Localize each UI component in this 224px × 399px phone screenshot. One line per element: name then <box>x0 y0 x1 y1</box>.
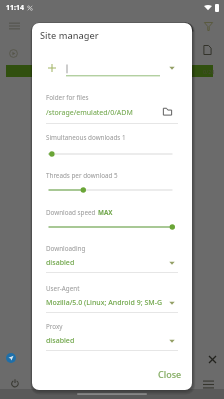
button[interactable]: Close <box>150 363 190 385</box>
staticText: 0/28 <box>203 68 215 75</box>
button[interactable]: Site name <box>66 63 160 77</box>
staticText: Site manager <box>40 29 99 42</box>
button[interactable] <box>49 222 172 232</box>
button[interactable]: Browse folder <box>158 102 176 120</box>
staticText: Folder for files <box>46 93 89 102</box>
staticText: Proxy <box>46 322 63 331</box>
staticText: disabled <box>46 258 166 268</box>
button[interactable]: disabled <box>46 252 178 274</box>
button[interactable] <box>49 149 172 159</box>
staticText: MAX <box>98 208 113 217</box>
button[interactable]: disabled <box>46 330 178 352</box>
button[interactable]: Select site <box>163 59 180 76</box>
button[interactable]: Telegram <box>6 353 16 363</box>
staticText: /storage/emulated/0/ADM <box>46 108 156 118</box>
button[interactable]: Add site <box>43 59 60 76</box>
button[interactable]: Mozilla/5.0 (Linux; Android 9; SM-G <box>46 292 178 314</box>
button[interactable] <box>49 185 172 195</box>
staticText: Close <box>158 368 182 380</box>
staticText: Downloading <box>46 244 86 253</box>
staticText: Simultaneous downloads 1 <box>46 133 126 142</box>
staticText: disabled <box>46 336 166 346</box>
staticText: User-Agent <box>46 284 80 293</box>
staticText: Download speed <box>46 208 98 217</box>
staticText: Threads per download 5 <box>46 171 118 180</box>
staticText: Mozilla/5.0 (Linux; Android 9; SM-G <box>46 298 166 308</box>
staticText: 11:14 <box>6 3 24 13</box>
